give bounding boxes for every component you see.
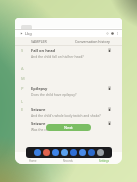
staticText: Settings	[99, 159, 109, 163]
staticText: Does the child have epilepsy?	[31, 92, 77, 96]
button[interactable]: Play audio	[107, 121, 112, 126]
staticText: Was the child unconscious?	[31, 127, 74, 131]
button[interactable]: Next	[46, 124, 91, 131]
button[interactable]: Conversation history	[62, 37, 122, 45]
staticText: A	[21, 66, 24, 71]
staticText: Fall on head	[31, 48, 56, 53]
button[interactable]: App icon	[79, 149, 86, 156]
button[interactable]: App icon	[52, 149, 59, 156]
button[interactable]: Settings	[86, 152, 122, 164]
button[interactable]: Seizure	[15, 105, 122, 117]
button[interactable]: Home	[15, 152, 50, 164]
button[interactable]: SAMPLER	[15, 37, 62, 45]
button[interactable]: Play audio	[107, 86, 112, 91]
staticText: E	[21, 107, 24, 112]
button[interactable]: Bookmark	[106, 32, 109, 35]
staticText: And the child's whole body twitch and sh…	[31, 113, 101, 117]
button[interactable]: App icon	[97, 149, 104, 156]
staticText: Records	[63, 159, 73, 163]
button[interactable]: App icon	[43, 149, 50, 156]
button[interactable]: App icon	[61, 149, 68, 156]
staticText: And the child fall on his/her head?	[31, 54, 84, 58]
button[interactable]: App icon	[88, 149, 95, 156]
button[interactable]	[21, 25, 32, 29]
staticText: Seizure	[31, 107, 46, 112]
button[interactable]: Profile	[111, 32, 114, 35]
staticText: P	[21, 86, 24, 91]
staticText: S	[21, 48, 24, 53]
staticText: M	[21, 76, 25, 81]
staticText: Lkg	[25, 31, 32, 36]
staticText: Epilepsy	[31, 86, 48, 91]
button[interactable]: More options	[116, 32, 119, 35]
staticText: L	[21, 99, 24, 104]
button[interactable]: Play audio	[107, 107, 112, 112]
button[interactable]: Forward	[20, 32, 23, 35]
button[interactable]: App icon	[70, 149, 77, 156]
staticText: Home	[29, 159, 37, 163]
staticText: Seizure	[31, 121, 46, 126]
button[interactable]: Seizure	[15, 119, 122, 131]
button[interactable]: Records	[50, 152, 86, 164]
button[interactable]: App icon	[34, 149, 41, 156]
button[interactable]: Play audio	[107, 48, 112, 53]
staticText: Next	[64, 125, 73, 130]
staticText: SAMPLER	[31, 39, 47, 44]
button[interactable]: Fall on head	[15, 46, 122, 58]
staticText: Conversation history	[75, 39, 110, 44]
button[interactable]: Epilepsy	[15, 84, 122, 96]
